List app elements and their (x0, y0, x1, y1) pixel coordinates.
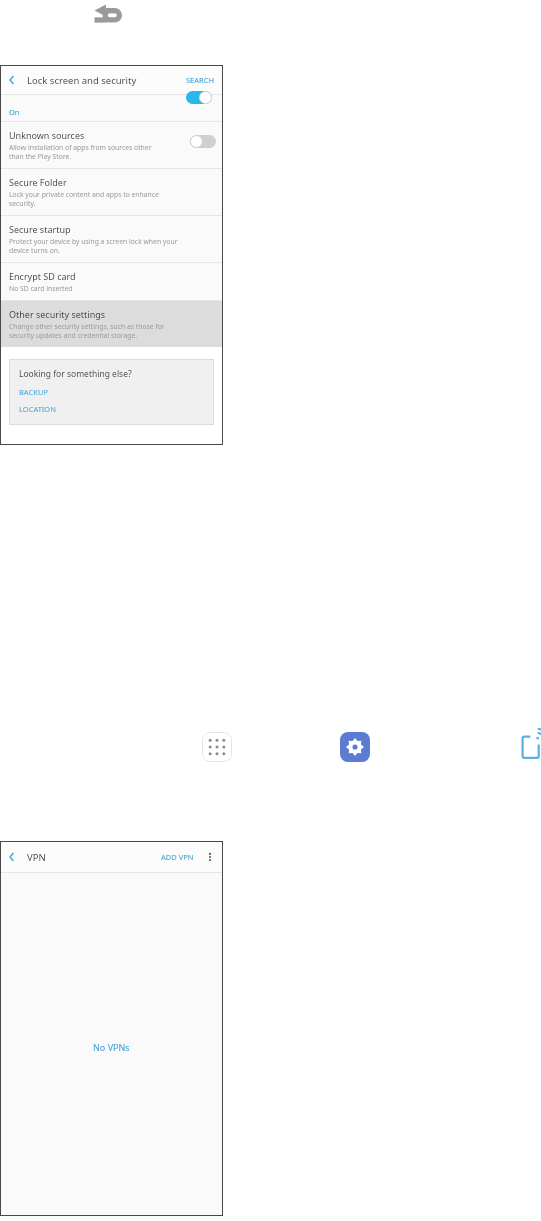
button[interactable]: BACKUP (19, 387, 48, 397)
button[interactable]: On (1, 95, 222, 121)
button[interactable]: Navigate up (1, 847, 21, 867)
staticText: On (9, 107, 20, 117)
staticText: Change other security settings, such as … (9, 322, 165, 340)
button[interactable]: Navigate up (1, 70, 21, 90)
button[interactable]: Apps (197, 727, 237, 767)
staticText: ADD VPN (161, 852, 194, 862)
button[interactable]: ADD VPN (161, 852, 194, 862)
staticText: LOCATION (19, 404, 56, 414)
button[interactable]: SEARCH (186, 75, 215, 85)
button[interactable] (186, 95, 212, 105)
staticText: Protect your device by using a screen lo… (9, 237, 178, 255)
staticText: Allow installation of apps from sources … (9, 143, 152, 161)
button[interactable]: Encrypt SD card (1, 263, 222, 300)
button[interactable]: More options (203, 850, 217, 864)
button[interactable]: Back (86, 1, 136, 31)
button[interactable]: Settings (335, 727, 375, 767)
staticText: No SD card inserted (9, 284, 73, 293)
staticText: Lock screen and security (27, 74, 137, 87)
staticText: SEARCH (186, 75, 215, 85)
button[interactable]: Secure Folder (1, 169, 222, 215)
staticText: Other security settings (9, 308, 106, 320)
staticText: Looking for something else? (19, 368, 132, 380)
staticText: Secure startup (9, 223, 71, 235)
button[interactable]: Other security settings (1, 301, 222, 347)
staticText: BACKUP (19, 387, 48, 397)
staticText: VPN (27, 851, 46, 864)
button[interactable]: Unknown sources (1, 122, 222, 168)
button[interactable]: Secure startup (1, 216, 222, 262)
staticText: Unknown sources (9, 129, 85, 141)
button[interactable] (190, 135, 216, 148)
staticText: Encrypt SD card (9, 270, 76, 282)
button[interactable]: VPN (513, 727, 541, 767)
staticText: Lock your private content and apps to en… (9, 190, 159, 208)
staticText: No VPNs (93, 1041, 130, 1053)
button[interactable]: LOCATION (19, 404, 56, 414)
staticText: Secure Folder (9, 176, 67, 188)
